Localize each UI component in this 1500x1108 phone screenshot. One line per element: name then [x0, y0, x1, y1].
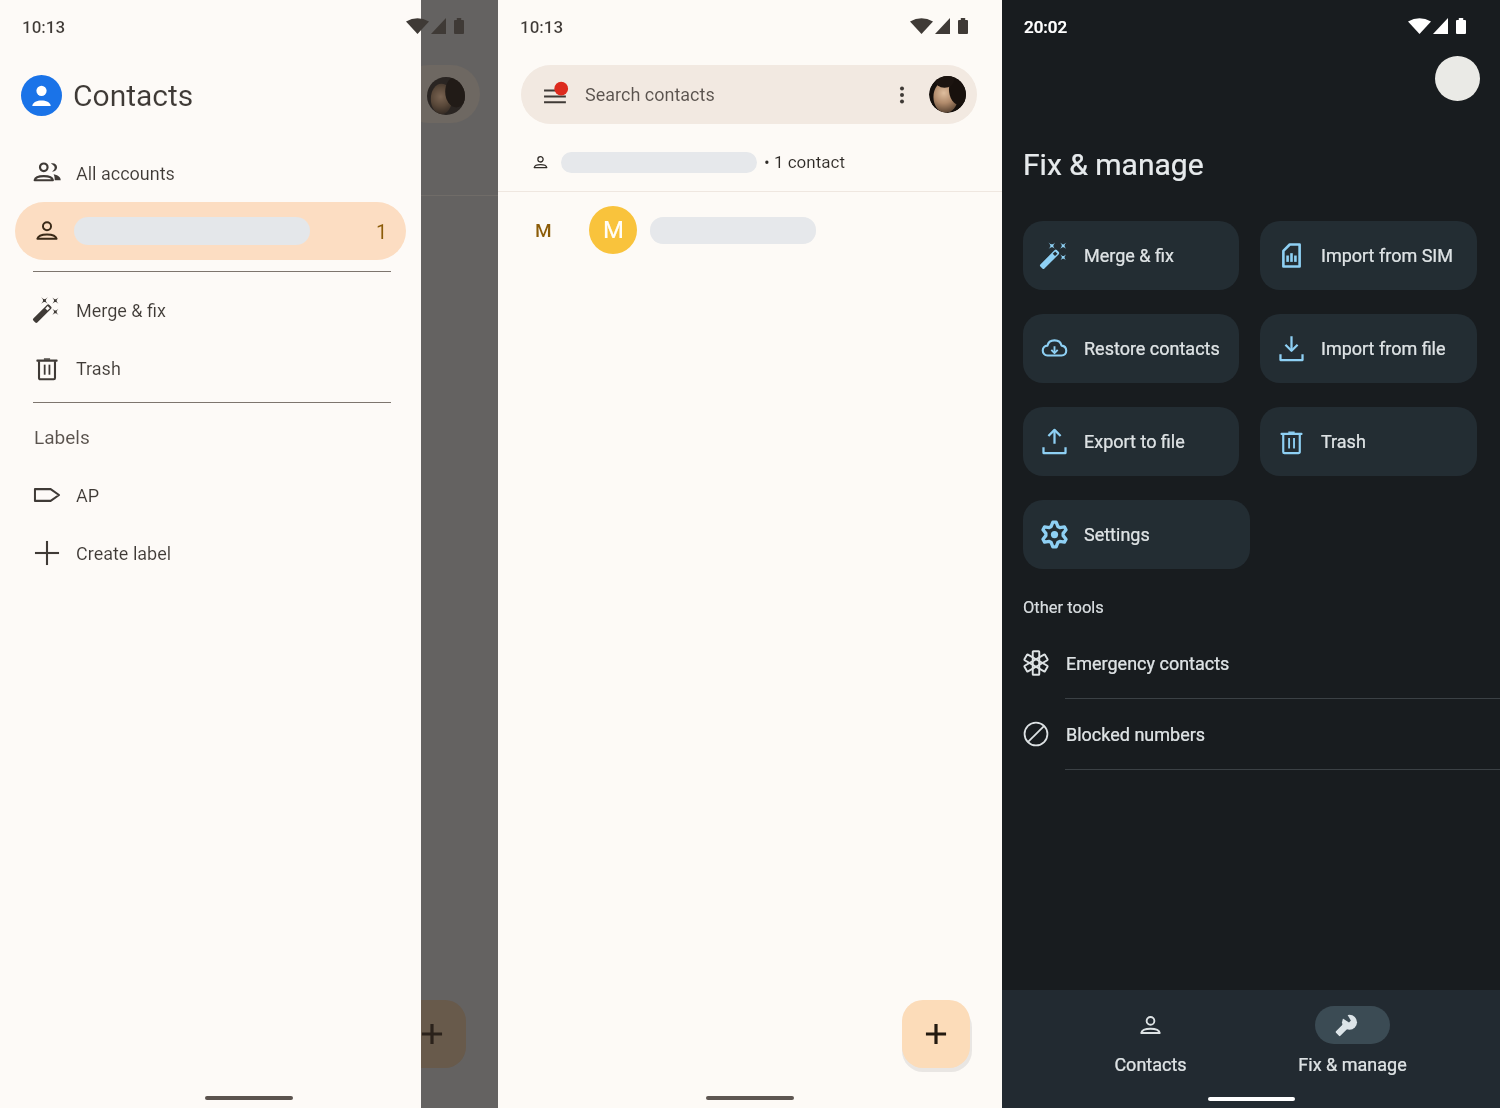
- button[interactable]: Blocked numbers: [1002, 699, 1500, 769]
- button[interactable]: Create contact: [902, 1000, 970, 1068]
- staticText: Other tools: [1023, 598, 1104, 617]
- staticText: Trash: [76, 358, 121, 379]
- button[interactable]: All accounts: [0, 144, 421, 202]
- button[interactable]: Trash: [0, 339, 421, 397]
- staticText: AP: [76, 485, 100, 506]
- button[interactable]: AP: [0, 466, 421, 524]
- button[interactable]: Emergency contacts: [1002, 628, 1500, 698]
- staticText: 10:13: [22, 17, 66, 37]
- button[interactable]: • 1 contact: [498, 133, 1002, 191]
- button[interactable]: Search contacts: [521, 65, 977, 124]
- button[interactable]: Fix & manage: [1251, 990, 1453, 1108]
- button[interactable]: Import from SIM: [1260, 221, 1477, 290]
- button[interactable]: Import from file: [1260, 314, 1477, 383]
- staticText: 1: [376, 220, 388, 243]
- staticText: Trash: [1321, 431, 1366, 452]
- staticText: M: [603, 216, 624, 244]
- button[interactable]: Merge & fix: [1023, 221, 1239, 290]
- button[interactable]: Trash: [1260, 407, 1477, 476]
- staticText: Restore contacts: [1084, 338, 1220, 359]
- button[interactable]: Account: [929, 76, 966, 113]
- staticText: Merge & fix: [76, 300, 166, 321]
- button[interactable]: Create label: [0, 524, 421, 582]
- button[interactable]: Settings: [1023, 500, 1250, 569]
- staticText: Labels: [34, 426, 90, 448]
- staticText: All accounts: [76, 163, 175, 184]
- staticText: Settings: [1084, 524, 1150, 545]
- staticText: 10:13: [520, 17, 564, 37]
- button[interactable]: 1: [15, 202, 406, 260]
- staticText: Contacts: [1114, 1054, 1187, 1075]
- staticText: Import from file: [1321, 338, 1446, 359]
- staticText: Import from SIM: [1321, 245, 1453, 266]
- button[interactable]: Account: [1435, 56, 1480, 101]
- staticText: Search contacts: [585, 84, 715, 105]
- staticText: Emergency contacts: [1066, 653, 1230, 674]
- button[interactable]: Contacts: [1049, 990, 1251, 1108]
- staticText: • 1 contact: [764, 152, 845, 172]
- button[interactable]: Restore contacts: [1023, 314, 1239, 383]
- button[interactable]: Export to file: [1023, 407, 1239, 476]
- staticText: M: [535, 219, 552, 241]
- staticText: Blocked numbers: [1066, 724, 1206, 745]
- button[interactable]: Merge & fix: [0, 281, 421, 339]
- staticText: Export to file: [1084, 431, 1185, 452]
- button[interactable]: More options: [885, 78, 919, 112]
- staticText: Fix & manage: [1023, 147, 1204, 182]
- staticText: 20:02: [1024, 17, 1068, 37]
- staticText: Create label: [76, 543, 172, 564]
- staticText: Contacts: [73, 78, 194, 113]
- staticText: Fix & manage: [1298, 1054, 1407, 1075]
- button[interactable]: M: [498, 206, 1002, 254]
- staticText: Merge & fix: [1084, 245, 1174, 266]
